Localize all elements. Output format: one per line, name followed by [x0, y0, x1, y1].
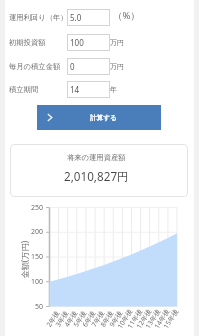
staticText: 将来の運用資産額 — [67, 153, 126, 162]
staticText: 250 — [22, 203, 43, 213]
button[interactable]: 計算する — [37, 105, 161, 130]
staticText: 10年後 — [115, 307, 135, 330]
staticText: 100 — [22, 277, 43, 287]
staticText: 毎月の積立金額 — [9, 62, 61, 71]
staticText: 200 — [22, 227, 43, 237]
staticText: 7年後 — [89, 308, 107, 328]
staticText: 9年後 — [107, 308, 125, 328]
staticText: 8年後 — [98, 308, 116, 328]
staticText: 13年後 — [143, 307, 163, 330]
staticText: 14 — [70, 84, 80, 95]
staticText: 積立期間 — [9, 85, 39, 94]
staticText: 0 — [70, 61, 75, 72]
staticText: 6年後 — [80, 308, 98, 328]
staticText: 150 — [22, 252, 43, 262]
staticText: 計算する — [90, 114, 117, 122]
staticText: 12年後 — [134, 307, 154, 330]
staticText: 初期投資額 — [9, 38, 46, 47]
staticText: 金額(万円) — [18, 240, 29, 278]
staticText: 万円 — [110, 38, 124, 47]
button[interactable]: 0 — [67, 58, 110, 75]
staticText: 5年後 — [71, 308, 89, 328]
staticText: 5.0 — [70, 12, 82, 23]
staticText: 3年後 — [53, 308, 71, 328]
staticText: 50 — [22, 302, 43, 312]
staticText: （%） — [113, 9, 140, 22]
button[interactable]: 5.0 — [67, 9, 110, 26]
staticText: 年 — [110, 85, 117, 94]
staticText: 100 — [70, 37, 84, 48]
staticText: 運用利回り（年） — [9, 13, 68, 22]
staticText: 14年後 — [152, 307, 172, 330]
staticText: 15年後 — [161, 307, 181, 330]
staticText: 2,010,827円 — [64, 168, 129, 184]
staticText: 4年後 — [62, 308, 80, 328]
staticText: 2年後 — [44, 308, 62, 328]
staticText: 万円 — [110, 62, 124, 71]
button[interactable]: 100 — [67, 34, 110, 51]
staticText: 11年後 — [125, 307, 145, 330]
button[interactable]: 14 — [67, 81, 110, 98]
